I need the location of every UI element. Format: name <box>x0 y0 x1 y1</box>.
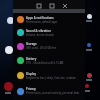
staticText: Permissions, account activity, personal … <box>26 91 80 95</box>
button[interactable]: Display <box>13 68 85 83</box>
staticText: Apps & notifications <box>26 16 54 20</box>
button[interactable]: Storage <box>13 39 85 53</box>
button[interactable]: App icon <box>7 17 14 24</box>
staticText: Battery <box>26 57 37 61</box>
staticText: Volume, do not disturb <box>26 33 54 37</box>
staticText: 38% used - 49.50 GB free <box>26 46 57 50</box>
button[interactable]: App icon <box>4 82 13 91</box>
button[interactable]: App icon <box>85 84 89 88</box>
button[interactable]: Close <box>62 3 68 9</box>
button[interactable]: Window control <box>36 3 42 9</box>
button[interactable]: Privacy <box>13 83 85 99</box>
button[interactable]: Window control <box>49 3 55 9</box>
button[interactable]: Battery <box>13 53 85 68</box>
button[interactable]: App icon <box>87 43 91 47</box>
button[interactable]: App icon <box>87 73 92 78</box>
staticText: Display <box>26 72 37 76</box>
button[interactable]: Sound & vibration <box>13 26 85 39</box>
staticText: Permissions, default apps <box>26 20 58 24</box>
staticText: 67% - Should last until 6:15 AM <box>26 61 64 65</box>
staticText: Storage <box>26 42 37 46</box>
staticText: Brightness level, sleep, font size, rota… <box>26 76 76 80</box>
staticText: Sound & vibration <box>26 29 51 33</box>
staticText: Privacy <box>26 87 36 91</box>
button[interactable]: Apps & notifications <box>13 13 85 26</box>
button[interactable]: App icon <box>87 14 92 19</box>
button[interactable]: App icon <box>5 46 13 54</box>
